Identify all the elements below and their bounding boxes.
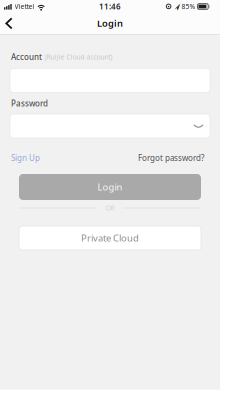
staticText: Account	[11, 51, 42, 62]
staticText: Private Cloud	[81, 232, 139, 244]
staticText: Login	[97, 181, 122, 193]
staticText: Login	[97, 17, 123, 29]
button[interactable]: Sign Up	[11, 152, 40, 163]
staticText: Password	[11, 98, 48, 109]
button[interactable]: Account	[10, 68, 210, 92]
staticText: 85%	[181, 2, 195, 11]
button[interactable]: Login	[19, 174, 201, 200]
button[interactable]: Private Cloud	[19, 226, 201, 250]
button[interactable]: Forgot password?	[138, 152, 204, 163]
staticText: Forgot password?	[138, 152, 204, 163]
staticText: OR	[105, 204, 114, 212]
staticText: (Ruijie Cloud account)	[44, 52, 112, 61]
staticText: 11:46	[99, 1, 121, 12]
button[interactable]: Password	[10, 114, 210, 138]
button[interactable]: Back	[4, 17, 14, 29]
button[interactable]: Show password	[191, 121, 205, 133]
staticText: Viettel	[14, 2, 34, 11]
staticText: Sign Up	[11, 152, 40, 163]
